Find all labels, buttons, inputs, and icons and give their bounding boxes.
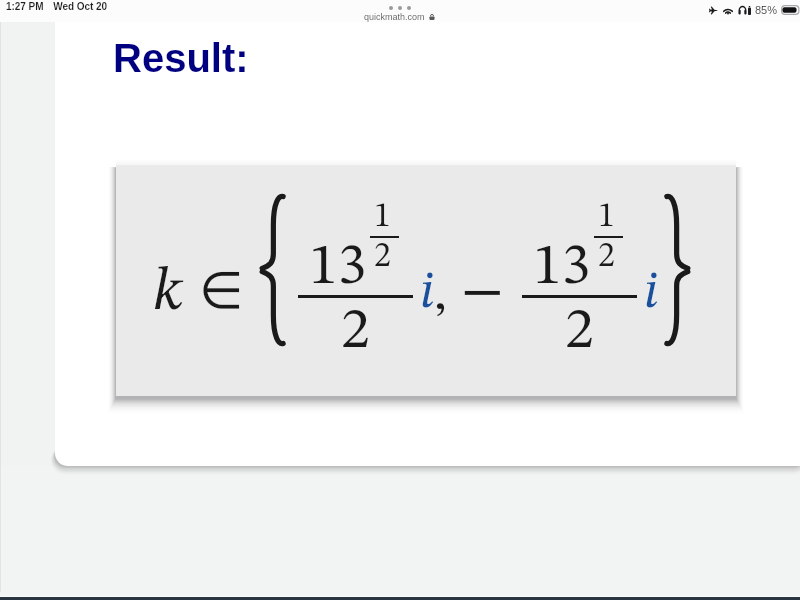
other: Battery 85 percent [781, 5, 800, 15]
other: Headphones connected [738, 6, 747, 15]
staticText: k [153, 263, 183, 323]
staticText: 1 [374, 200, 391, 234]
staticText: 2 [565, 303, 594, 361]
staticText: − [461, 263, 504, 322]
staticText: i [644, 267, 659, 319]
button[interactable] [116, 165, 736, 396]
staticText: , [434, 269, 447, 321]
other: Wi-Fi [722, 6, 734, 15]
staticText: 13 [533, 239, 591, 297]
staticText: 1:27 PM Wed Oct 20 [6, 1, 108, 12]
staticText: quickmath.com [364, 12, 425, 22]
staticText: 2 [374, 240, 391, 274]
staticText: 2 [598, 240, 615, 274]
staticText: Result: [113, 36, 249, 81]
other: Airplane mode [709, 6, 718, 15]
staticText: 2 [341, 303, 370, 361]
staticText: 13 [309, 239, 367, 297]
staticText: 85% [755, 4, 778, 16]
staticText: i [420, 267, 435, 319]
staticText: 1 [598, 200, 615, 234]
staticText: ∈ [199, 261, 244, 320]
